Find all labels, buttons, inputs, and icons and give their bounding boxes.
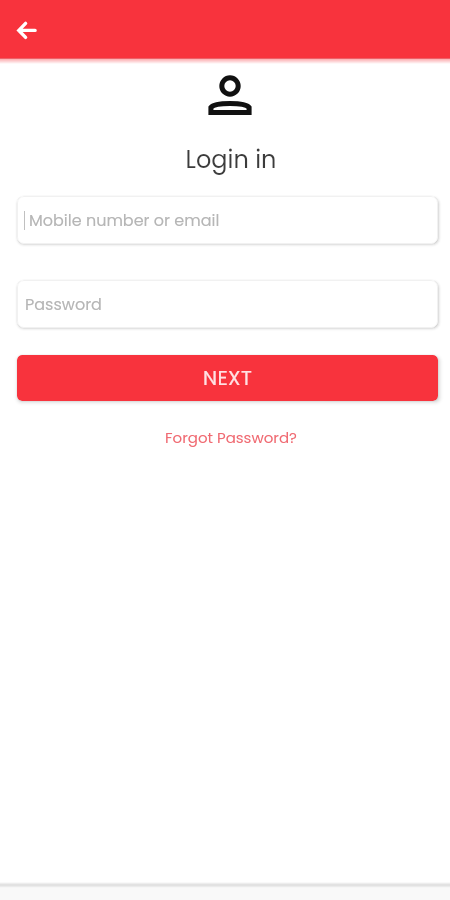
staticText: Password [25, 293, 102, 315]
button[interactable]: Forgot Password? [159, 424, 303, 451]
staticText: Forgot Password? [165, 427, 297, 448]
button[interactable]: NEXT [17, 355, 438, 401]
button[interactable]: Password [17, 280, 438, 328]
staticText: Mobile number or email [29, 209, 220, 231]
staticText: Login in [6, 143, 450, 177]
button[interactable]: Back [13, 16, 41, 44]
staticText: NEXT [203, 364, 253, 392]
button[interactable]: Mobile number or email [17, 196, 438, 244]
